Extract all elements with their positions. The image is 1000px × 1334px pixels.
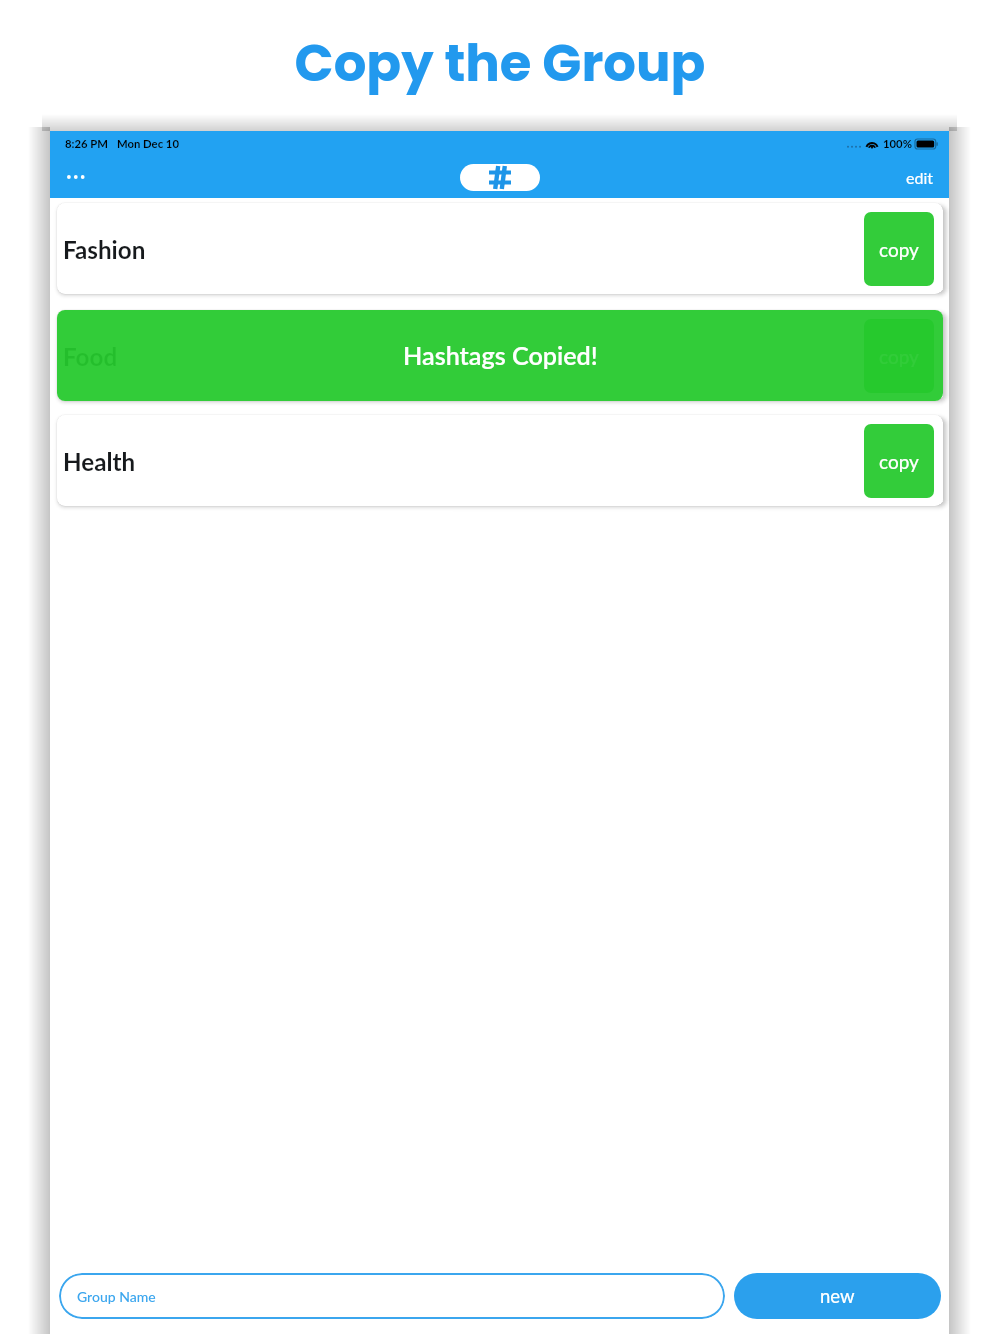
button[interactable]: edit	[898, 162, 941, 193]
staticText: Mon Dec 10	[117, 137, 179, 151]
button[interactable]: More options	[61, 162, 91, 192]
staticText: Fashion	[63, 235, 146, 264]
button[interactable]: Group Name	[59, 1273, 725, 1319]
staticText: Copy the Group	[0, 27, 1000, 99]
button[interactable]: new	[734, 1273, 941, 1319]
staticText: copy	[879, 450, 919, 473]
staticText: edit	[906, 168, 933, 187]
staticText: copy	[879, 238, 919, 261]
staticText: new	[820, 1285, 855, 1307]
button[interactable]: copy	[864, 212, 934, 286]
staticText: Food	[63, 342, 118, 371]
staticText: 8:26 PM	[65, 137, 108, 151]
button[interactable]: Health	[57, 415, 943, 506]
button[interactable]: Food	[57, 310, 943, 401]
staticText: Hashtags Copied!	[403, 340, 598, 370]
staticText: Health	[63, 447, 136, 476]
staticText: 100%	[883, 137, 912, 151]
staticText: copy	[879, 345, 919, 368]
button[interactable]: Fashion	[57, 203, 943, 294]
staticText: Group Name	[77, 1288, 156, 1305]
button[interactable]: Hashtags	[460, 164, 540, 191]
button[interactable]: copy	[864, 424, 934, 498]
